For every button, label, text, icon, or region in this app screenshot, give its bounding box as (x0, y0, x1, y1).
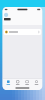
button[interactable]: Home (4, 79, 13, 85)
button[interactable]: Search (13, 79, 22, 85)
button[interactable]: Profile (32, 79, 41, 85)
button[interactable]: Back (3, 7, 10, 12)
button[interactable]: Library (22, 79, 32, 85)
button[interactable]: Compose (35, 7, 42, 12)
button[interactable] (4, 29, 41, 35)
